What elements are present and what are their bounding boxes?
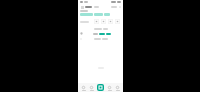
button[interactable] [78, 36, 123, 41]
button[interactable]: Action 1 [94, 19, 99, 24]
button[interactable]: Action 4 [115, 19, 120, 24]
button[interactable]: Add [97, 84, 104, 91]
button[interactable]: Alerts [106, 83, 113, 92]
button[interactable] [78, 31, 123, 36]
button[interactable]: Home [80, 83, 87, 92]
button[interactable]: More options [118, 5, 121, 8]
button[interactable]: Search [88, 83, 95, 92]
button[interactable]: Profile [114, 83, 121, 92]
button[interactable]: Action 3 [108, 19, 113, 24]
button[interactable]: Action 2 [101, 19, 106, 24]
button[interactable]: Menu [80, 5, 84, 9]
button[interactable] [78, 26, 123, 31]
